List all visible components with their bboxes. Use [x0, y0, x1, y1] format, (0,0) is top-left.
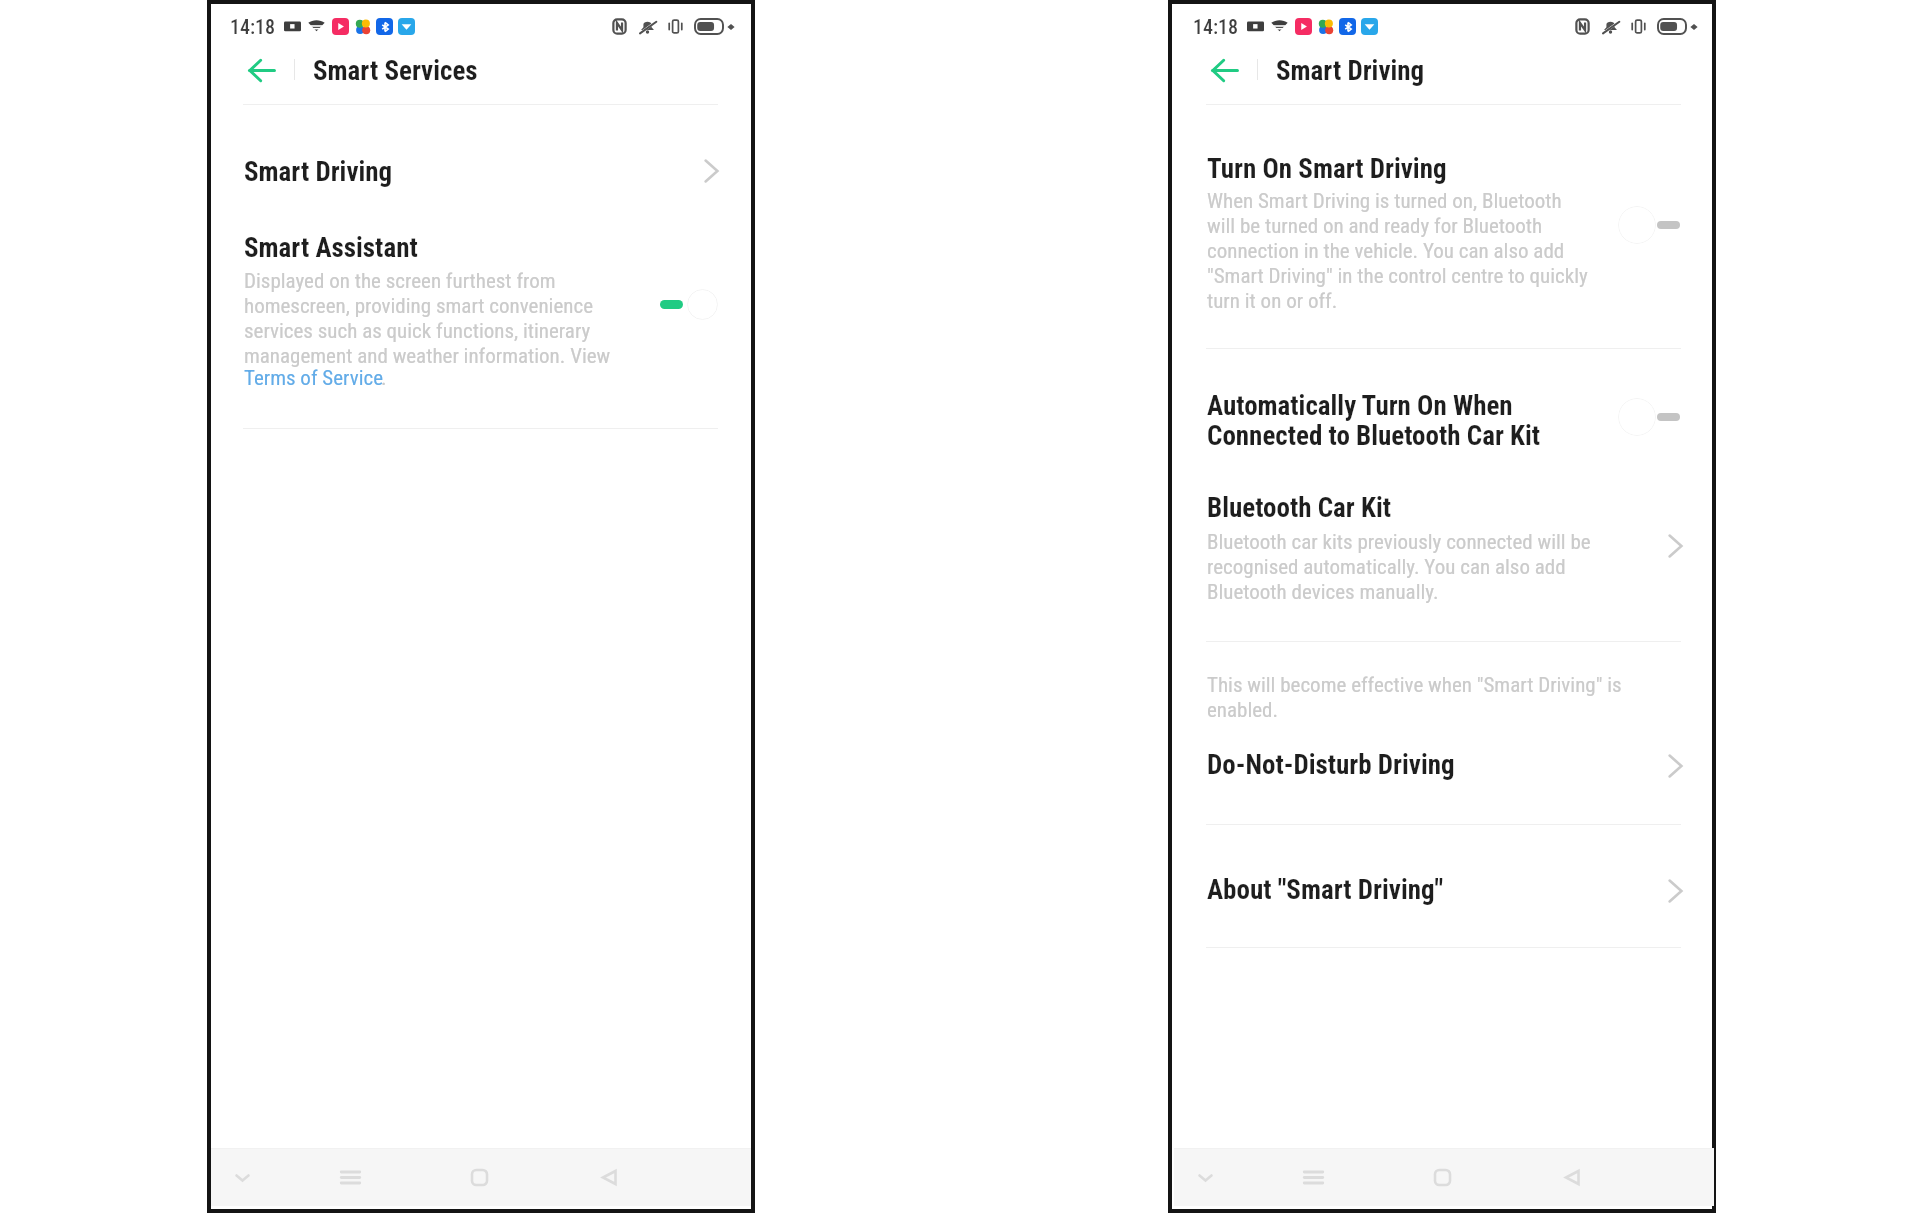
button[interactable]: Smart Assistant toggle: [656, 282, 728, 326]
staticText: .: [381, 366, 387, 391]
button[interactable]: Smart Driving: [243, 142, 725, 200]
staticText: Smart Assistant: [244, 232, 418, 264]
button[interactable]: Back: [579, 1149, 639, 1206]
staticText: Automatically Turn On When Connected to …: [1207, 390, 1541, 452]
button[interactable]: Do-Not-Disturb Driving: [1206, 745, 1688, 801]
button[interactable]: Home: [1412, 1149, 1472, 1206]
button[interactable]: About Smart Driving: [1206, 870, 1688, 926]
button[interactable]: Back: [1542, 1149, 1602, 1206]
staticText: Turn On Smart Driving: [1207, 153, 1447, 185]
staticText: Smart Services: [313, 55, 478, 87]
staticText: Bluetooth Car Kit: [1207, 492, 1391, 524]
button[interactable]: Back: [240, 49, 283, 92]
button[interactable]: Automatically turn on toggle: [1618, 395, 1690, 439]
staticText: Smart Driving: [1276, 55, 1425, 87]
button[interactable]: Back: [1203, 49, 1246, 92]
button[interactable]: Recent apps: [320, 1149, 380, 1206]
button[interactable]: Recent apps: [1283, 1149, 1343, 1206]
button[interactable]: Bluetooth Car Kit: [1206, 478, 1688, 608]
staticText: This will become effective when "Smart D…: [1207, 673, 1622, 723]
button[interactable]: Automatically Turn On When Connected to …: [1206, 378, 1688, 464]
button[interactable]: Home: [449, 1149, 509, 1206]
button[interactable]: Turn On Smart Driving: [1206, 140, 1688, 330]
button[interactable]: Smart Assistant: [243, 222, 725, 432]
staticText: When Smart Driving is turned on, Bluetoo…: [1207, 189, 1588, 314]
staticText: Terms of Service: [244, 366, 384, 391]
staticText: Bluetooth car kits previously connected …: [1207, 530, 1591, 605]
staticText: About "Smart Driving": [1207, 874, 1444, 906]
staticText: Smart Driving: [244, 156, 393, 188]
button[interactable]: Turn on Smart Driving toggle: [1618, 203, 1690, 247]
staticText: 14:18: [1193, 15, 1239, 38]
staticText: Displayed on the screen furthest from ho…: [244, 269, 611, 369]
staticText: 14:18: [230, 15, 276, 38]
staticText: Do-Not-Disturb Driving: [1207, 749, 1455, 781]
